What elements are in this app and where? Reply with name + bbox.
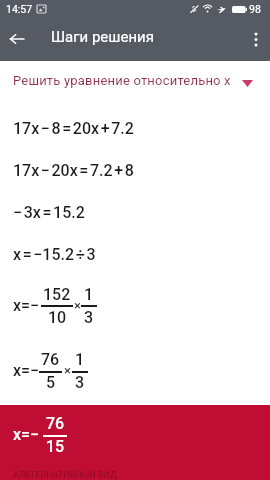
- staticText: Шаги решения: [51, 28, 154, 46]
- staticText: 1: [84, 285, 94, 304]
- button[interactable]: Решить уравнение относительно x: [0, 61, 270, 105]
- staticText: 10: [48, 308, 67, 327]
- button[interactable]: More options: [244, 27, 268, 51]
- staticText: 76: [46, 414, 65, 433]
- staticText: 5: [46, 373, 56, 392]
- staticText: 76: [41, 350, 60, 369]
- staticText: 17x − 8 = 20x + 7.2: [13, 119, 134, 138]
- staticText: 14:57: [6, 3, 33, 15]
- staticText: АЛЬТЕРНАТИВНЫЙ ВИД: [13, 470, 117, 480]
- staticText: x=−: [13, 425, 40, 444]
- staticText: 98: [249, 3, 261, 15]
- staticText: x=−: [13, 361, 40, 380]
- staticText: ×: [74, 298, 81, 313]
- staticText: 152: [43, 285, 71, 304]
- staticText: x = −15.2 ÷ 3: [13, 245, 96, 264]
- staticText: Решить уравнение относительно x: [13, 73, 231, 88]
- staticText: 17x − 20x = 7.2 + 8: [13, 161, 134, 180]
- staticText: 3: [75, 373, 85, 392]
- button[interactable]: Back: [5, 27, 29, 51]
- button[interactable]: x=−: [0, 405, 270, 480]
- staticText: 1: [75, 350, 85, 369]
- staticText: x=−: [13, 296, 40, 315]
- staticText: 15: [46, 437, 65, 456]
- staticText: 3: [84, 308, 94, 327]
- staticText: − 3x = 15.2: [13, 203, 85, 222]
- staticText: ×: [64, 363, 71, 378]
